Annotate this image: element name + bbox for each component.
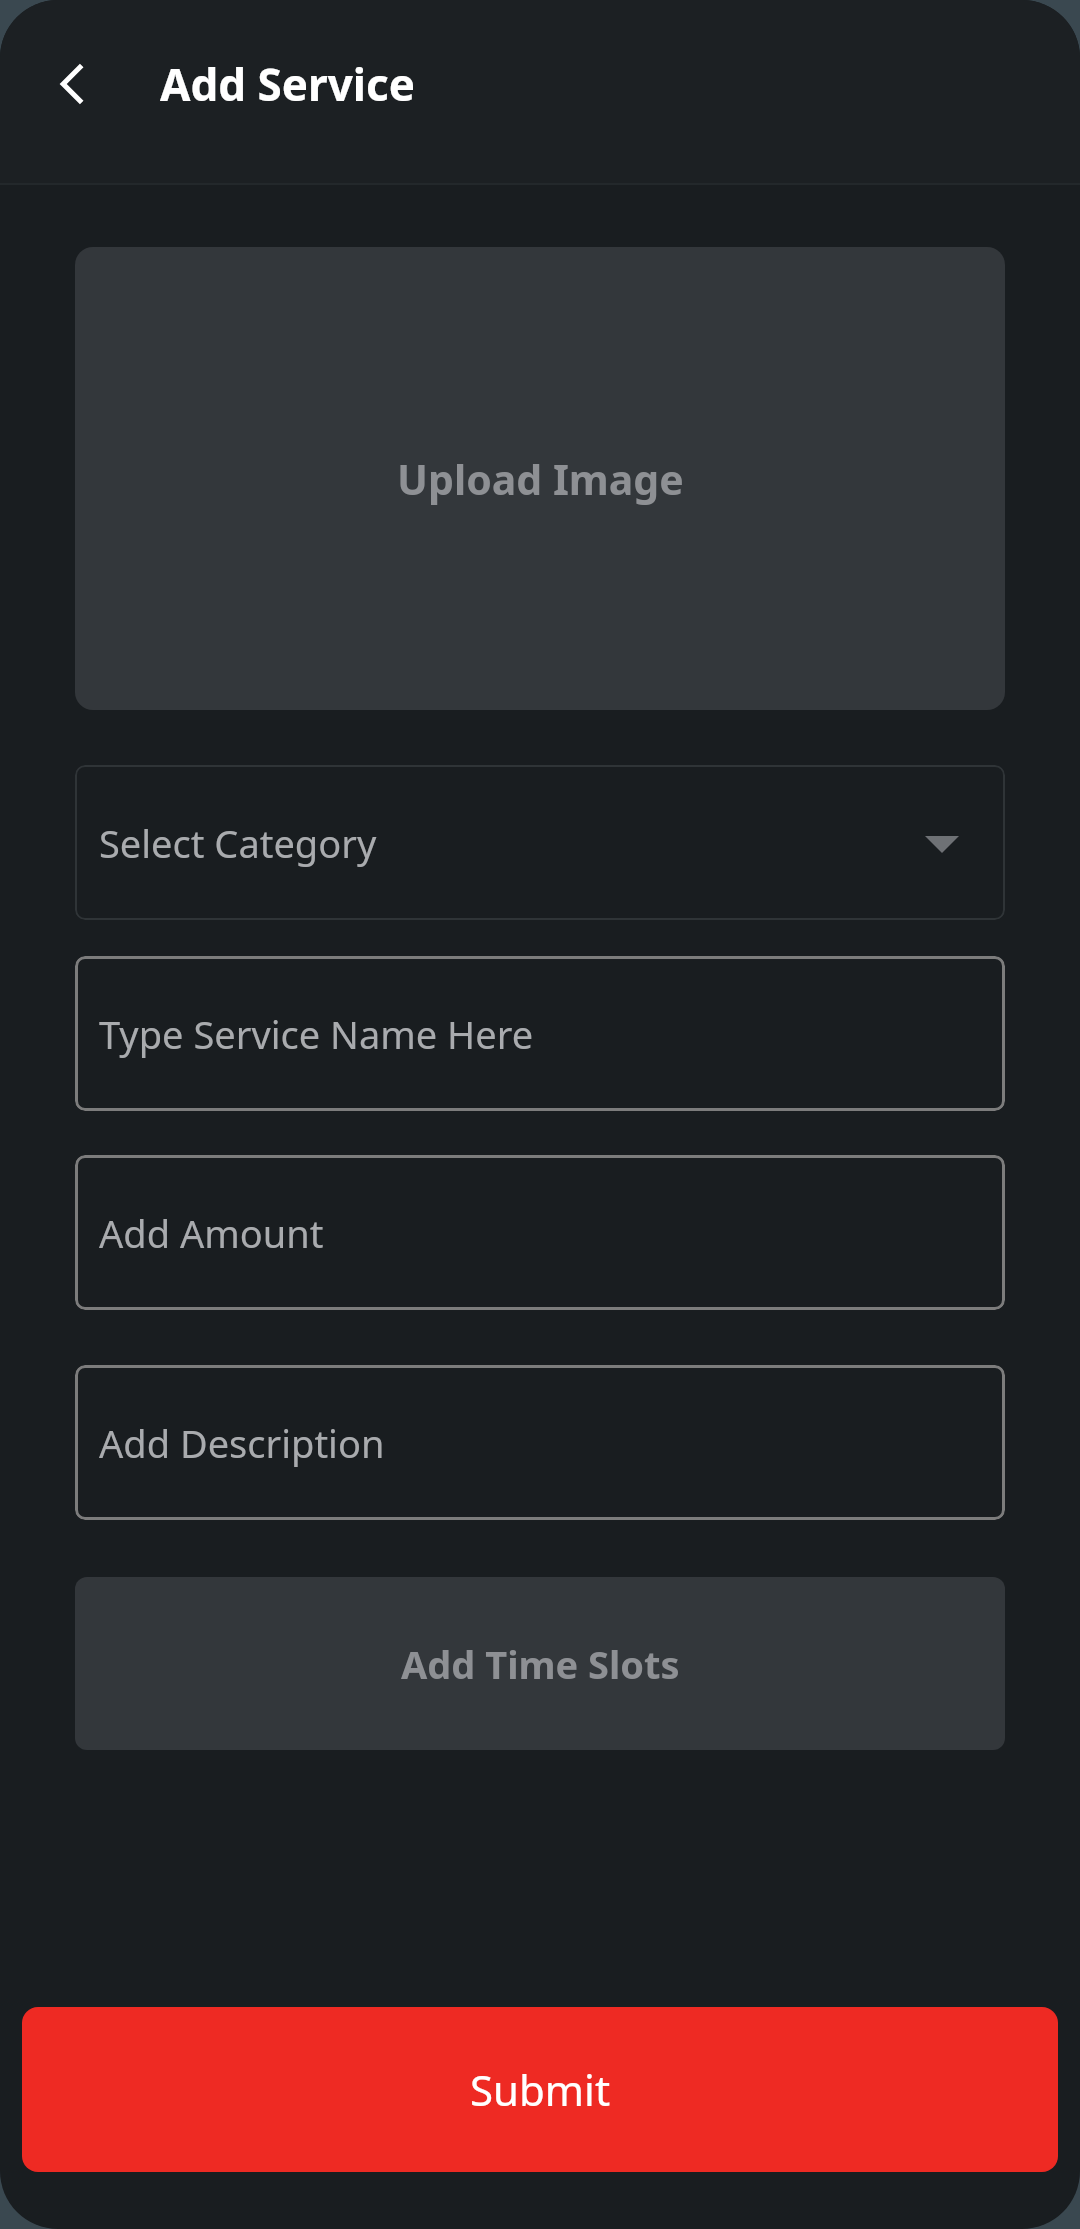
button[interactable]: Add Time Slots <box>75 1577 1005 1750</box>
staticText: Add Description <box>99 1417 385 1469</box>
staticText: Type Service Name Here <box>99 1008 534 1060</box>
button[interactable]: Add Amount <box>75 1155 1005 1310</box>
staticText: Select Category <box>99 817 377 869</box>
button[interactable]: Select Category <box>75 765 1005 920</box>
staticText: Upload Image <box>397 451 684 507</box>
button[interactable]: Submit <box>22 2007 1058 2172</box>
staticText: Add Amount <box>99 1207 324 1259</box>
staticText: Add Time Slots <box>401 1638 680 1690</box>
staticText: Add Service <box>160 54 415 114</box>
button[interactable]: Upload Image <box>75 247 1005 710</box>
button[interactable]: Type Service Name Here <box>75 956 1005 1111</box>
button[interactable]: Add Description <box>75 1365 1005 1520</box>
staticText: Submit <box>470 2061 611 2118</box>
button[interactable]: Back <box>30 42 114 126</box>
